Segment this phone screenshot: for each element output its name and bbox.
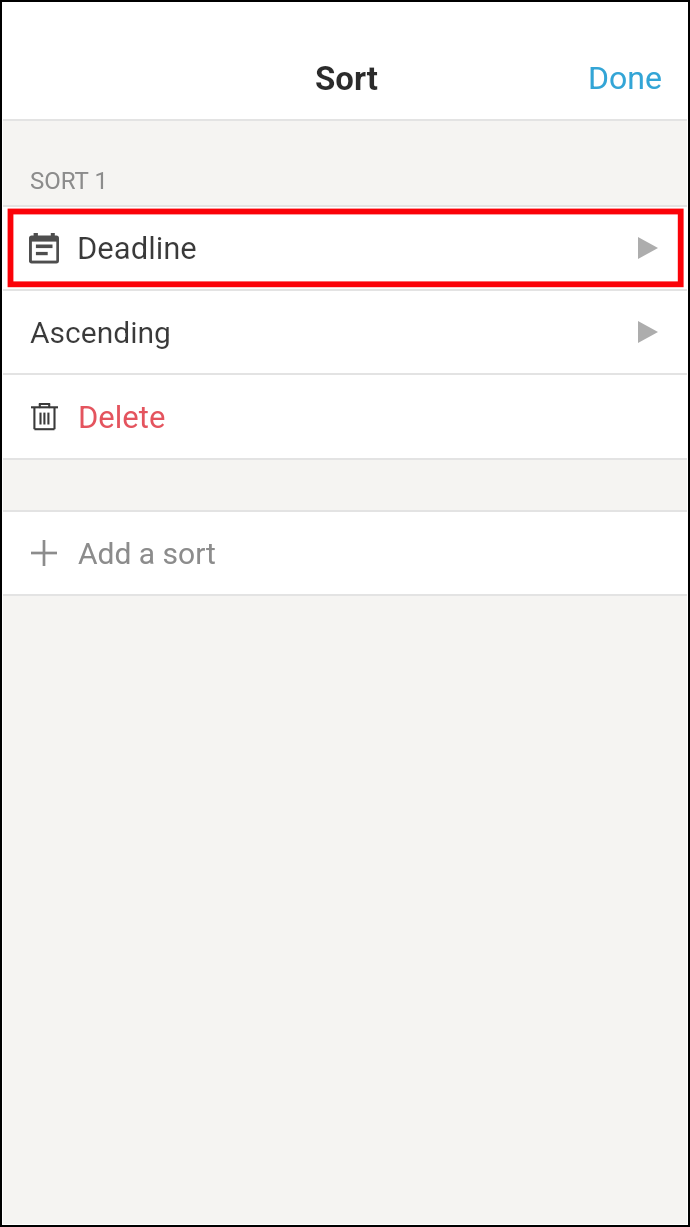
staticText: Done xyxy=(588,59,662,95)
other: Deadline field xyxy=(29,233,59,264)
staticText: Add a sort xyxy=(78,536,216,571)
staticText: Ascending xyxy=(30,315,171,350)
button[interactable]: Deadline field xyxy=(3,207,687,289)
button[interactable]: Ascending xyxy=(3,291,687,373)
staticText: SORT 1 xyxy=(30,167,108,195)
other: Open xyxy=(638,237,658,259)
other: Open xyxy=(638,321,658,343)
staticText: Sort xyxy=(315,59,379,98)
button[interactable]: Add a sort xyxy=(3,512,687,594)
other: Add a sort xyxy=(31,540,57,566)
button[interactable]: Done xyxy=(558,3,687,119)
staticText: Deadline xyxy=(77,230,197,266)
button[interactable]: Delete xyxy=(3,375,687,458)
other: Delete xyxy=(31,403,58,430)
staticText: Delete xyxy=(78,399,166,435)
